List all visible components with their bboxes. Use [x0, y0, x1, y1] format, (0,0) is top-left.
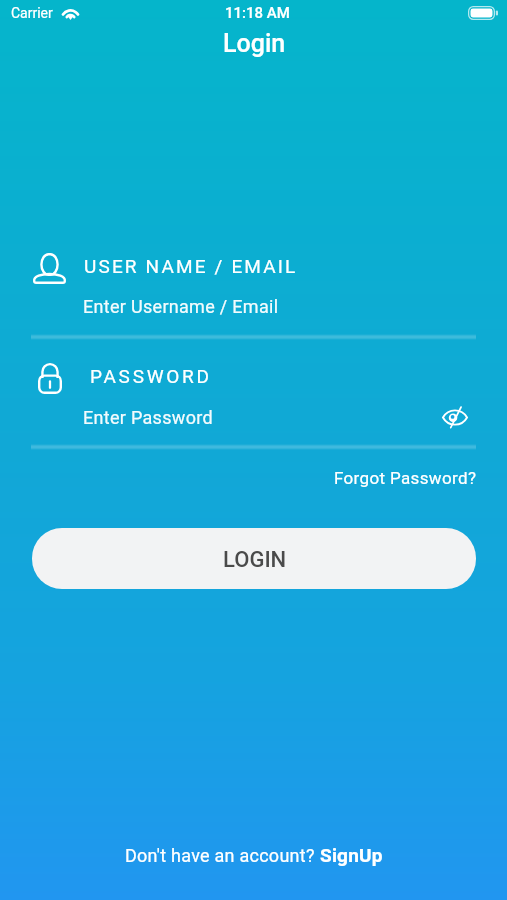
button[interactable]: Username or email field	[31, 290, 476, 338]
staticText: Login	[223, 29, 286, 58]
staticText: USER NAME / EMAIL	[84, 255, 298, 277]
staticText: Don't have an account?	[125, 845, 320, 866]
button[interactable]: Password field	[31, 400, 427, 448]
staticText: SignUp	[320, 844, 383, 866]
staticText: Forgot Password?	[334, 468, 477, 488]
button[interactable]: Forgot Password?	[325, 462, 477, 494]
button[interactable]: Show password	[434, 396, 476, 438]
staticText: Enter Username / Email	[83, 296, 279, 317]
button[interactable]: Don't have an account?	[0, 842, 507, 868]
staticText: PASSWORD	[90, 365, 212, 387]
button[interactable]: LOGIN	[32, 528, 476, 589]
staticText: Enter Password	[83, 407, 213, 428]
staticText: 11:18 AM	[225, 4, 290, 22]
staticText: LOGIN	[223, 547, 287, 573]
staticText: Carrier	[11, 5, 53, 21]
